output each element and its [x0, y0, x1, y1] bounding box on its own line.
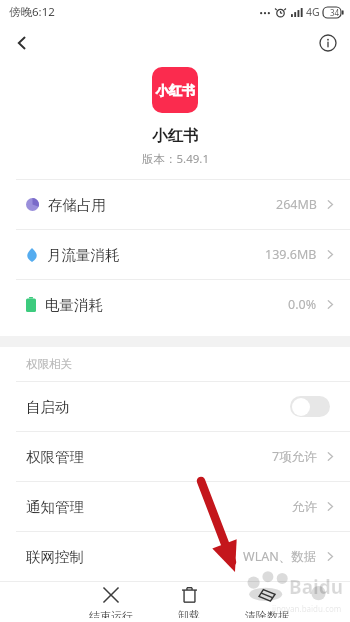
button[interactable]: 清除数据 — [239, 582, 295, 622]
button[interactable]: 联网控制 — [0, 532, 350, 581]
staticText: 卸载 — [178, 608, 200, 618]
staticText: 通知管理 — [26, 498, 84, 516]
button[interactable]: 电量消耗 — [0, 280, 350, 329]
button[interactable]: 权限管理 — [0, 432, 350, 481]
staticText: 小红书 — [156, 82, 195, 98]
staticText: 傍晚6:12 — [9, 4, 55, 20]
staticText: 存储占用 — [48, 196, 106, 214]
staticText: 电量消耗 — [45, 296, 103, 314]
staticText: WLAN、数据 — [243, 548, 317, 565]
staticText: 权限相关 — [26, 357, 72, 371]
staticText: 结束运行 — [89, 609, 133, 618]
staticText: Baidu — [289, 574, 344, 600]
button[interactable]: 自启动 — [0, 382, 350, 431]
button[interactable]: 通知管理 — [0, 482, 350, 531]
staticText: 允许 — [292, 499, 317, 515]
staticText: 7项允许 — [272, 448, 317, 465]
staticText: 清除数据 — [245, 609, 289, 618]
button[interactable]: 结束运行 — [83, 582, 139, 622]
button[interactable]: 月流量消耗 — [0, 230, 350, 279]
button[interactable]: Info — [306, 24, 350, 62]
staticText: 版本：5.49.1 — [142, 151, 209, 167]
button[interactable]: Back — [0, 24, 44, 62]
staticText: 264MB — [276, 196, 317, 213]
staticText: jingyan.baidu.com — [272, 603, 342, 614]
staticText: 34 — [330, 7, 340, 18]
staticText: 小红书 — [152, 126, 199, 146]
staticText: 4G — [306, 5, 320, 19]
button[interactable]: 存储占用 — [0, 180, 350, 229]
button[interactable]: 卸载 — [172, 582, 206, 622]
staticText: 自启动 — [26, 398, 70, 416]
staticText: 联网控制 — [26, 548, 84, 566]
staticText: 139.6MB — [265, 246, 317, 263]
staticText: 0.0% — [288, 296, 317, 313]
staticText: 月流量消耗 — [47, 246, 120, 264]
staticText: 权限管理 — [26, 448, 84, 466]
